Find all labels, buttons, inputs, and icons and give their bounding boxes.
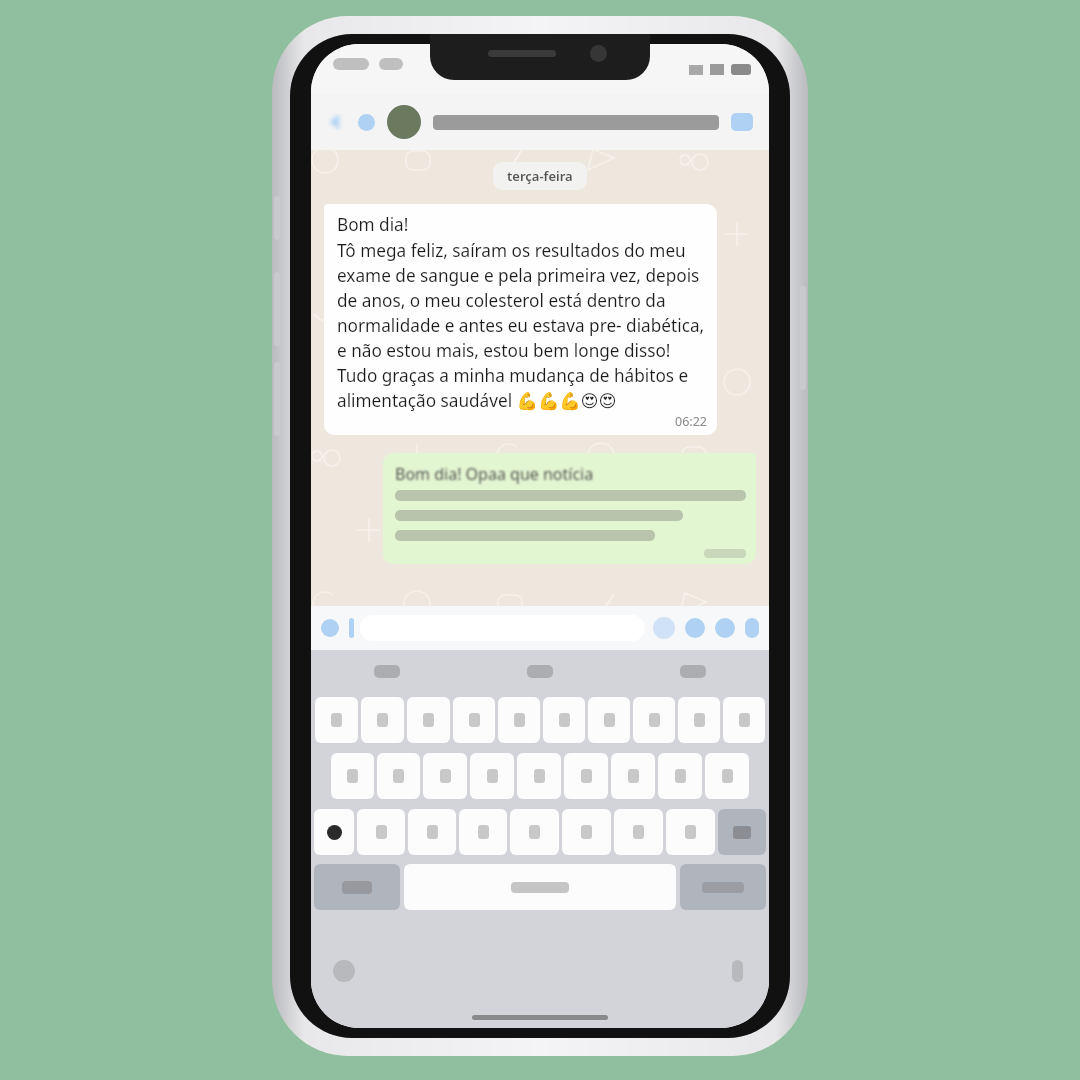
button[interactable]: [723, 697, 765, 743]
button[interactable]: [453, 697, 495, 743]
button[interactable]: Voice input: [732, 960, 743, 982]
button[interactable]: [562, 809, 611, 855]
button[interactable]: [498, 697, 540, 743]
button[interactable]: [680, 864, 766, 910]
button[interactable]: [311, 665, 463, 678]
button[interactable]: Bom dia! Opaa que notícia: [395, 463, 746, 558]
button[interactable]: Gallery: [715, 618, 735, 638]
button[interactable]: [666, 809, 715, 855]
staticText: Bom dia! Opaa que notícia: [395, 463, 594, 485]
button[interactable]: [315, 697, 358, 743]
button[interactable]: [331, 753, 374, 799]
button[interactable]: [678, 697, 720, 743]
button[interactable]: [705, 753, 749, 799]
button[interactable]: [470, 753, 514, 799]
button[interactable]: Camera: [685, 618, 705, 638]
button[interactable]: Unread count: [355, 111, 377, 133]
button[interactable]: Emoji keyboard: [333, 960, 355, 982]
button[interactable]: [377, 753, 420, 799]
staticText: Bom dia! Tô mega feliz, saíram os result…: [337, 213, 707, 412]
button[interactable]: [510, 809, 559, 855]
staticText: 06:22: [675, 413, 707, 430]
button[interactable]: [611, 753, 655, 799]
button[interactable]: [633, 697, 675, 743]
button[interactable]: Attach: [653, 617, 675, 639]
button[interactable]: [463, 665, 616, 678]
button[interactable]: [543, 697, 585, 743]
button[interactable]: [357, 809, 405, 855]
button[interactable]: Back: [325, 111, 347, 133]
button[interactable]: [404, 864, 676, 910]
button[interactable]: [517, 753, 561, 799]
button[interactable]: [564, 753, 608, 799]
button[interactable]: terça-feira: [507, 167, 573, 185]
button[interactable]: [361, 697, 404, 743]
button[interactable]: [407, 697, 450, 743]
button[interactable]: Emoji: [321, 619, 339, 637]
button[interactable]: [658, 753, 702, 799]
button[interactable]: Video call: [729, 109, 755, 135]
button[interactable]: [614, 809, 663, 855]
button[interactable]: [718, 809, 766, 855]
button[interactable]: [459, 809, 507, 855]
button[interactable]: [588, 697, 630, 743]
button[interactable]: Contact photo: [387, 105, 421, 139]
button[interactable]: [423, 753, 467, 799]
button[interactable]: Voice message: [745, 618, 759, 638]
button[interactable]: [314, 864, 400, 910]
staticText: terça-feira: [507, 167, 573, 185]
button[interactable]: [616, 665, 769, 678]
button[interactable]: [408, 809, 456, 855]
button[interactable]: [314, 809, 354, 855]
